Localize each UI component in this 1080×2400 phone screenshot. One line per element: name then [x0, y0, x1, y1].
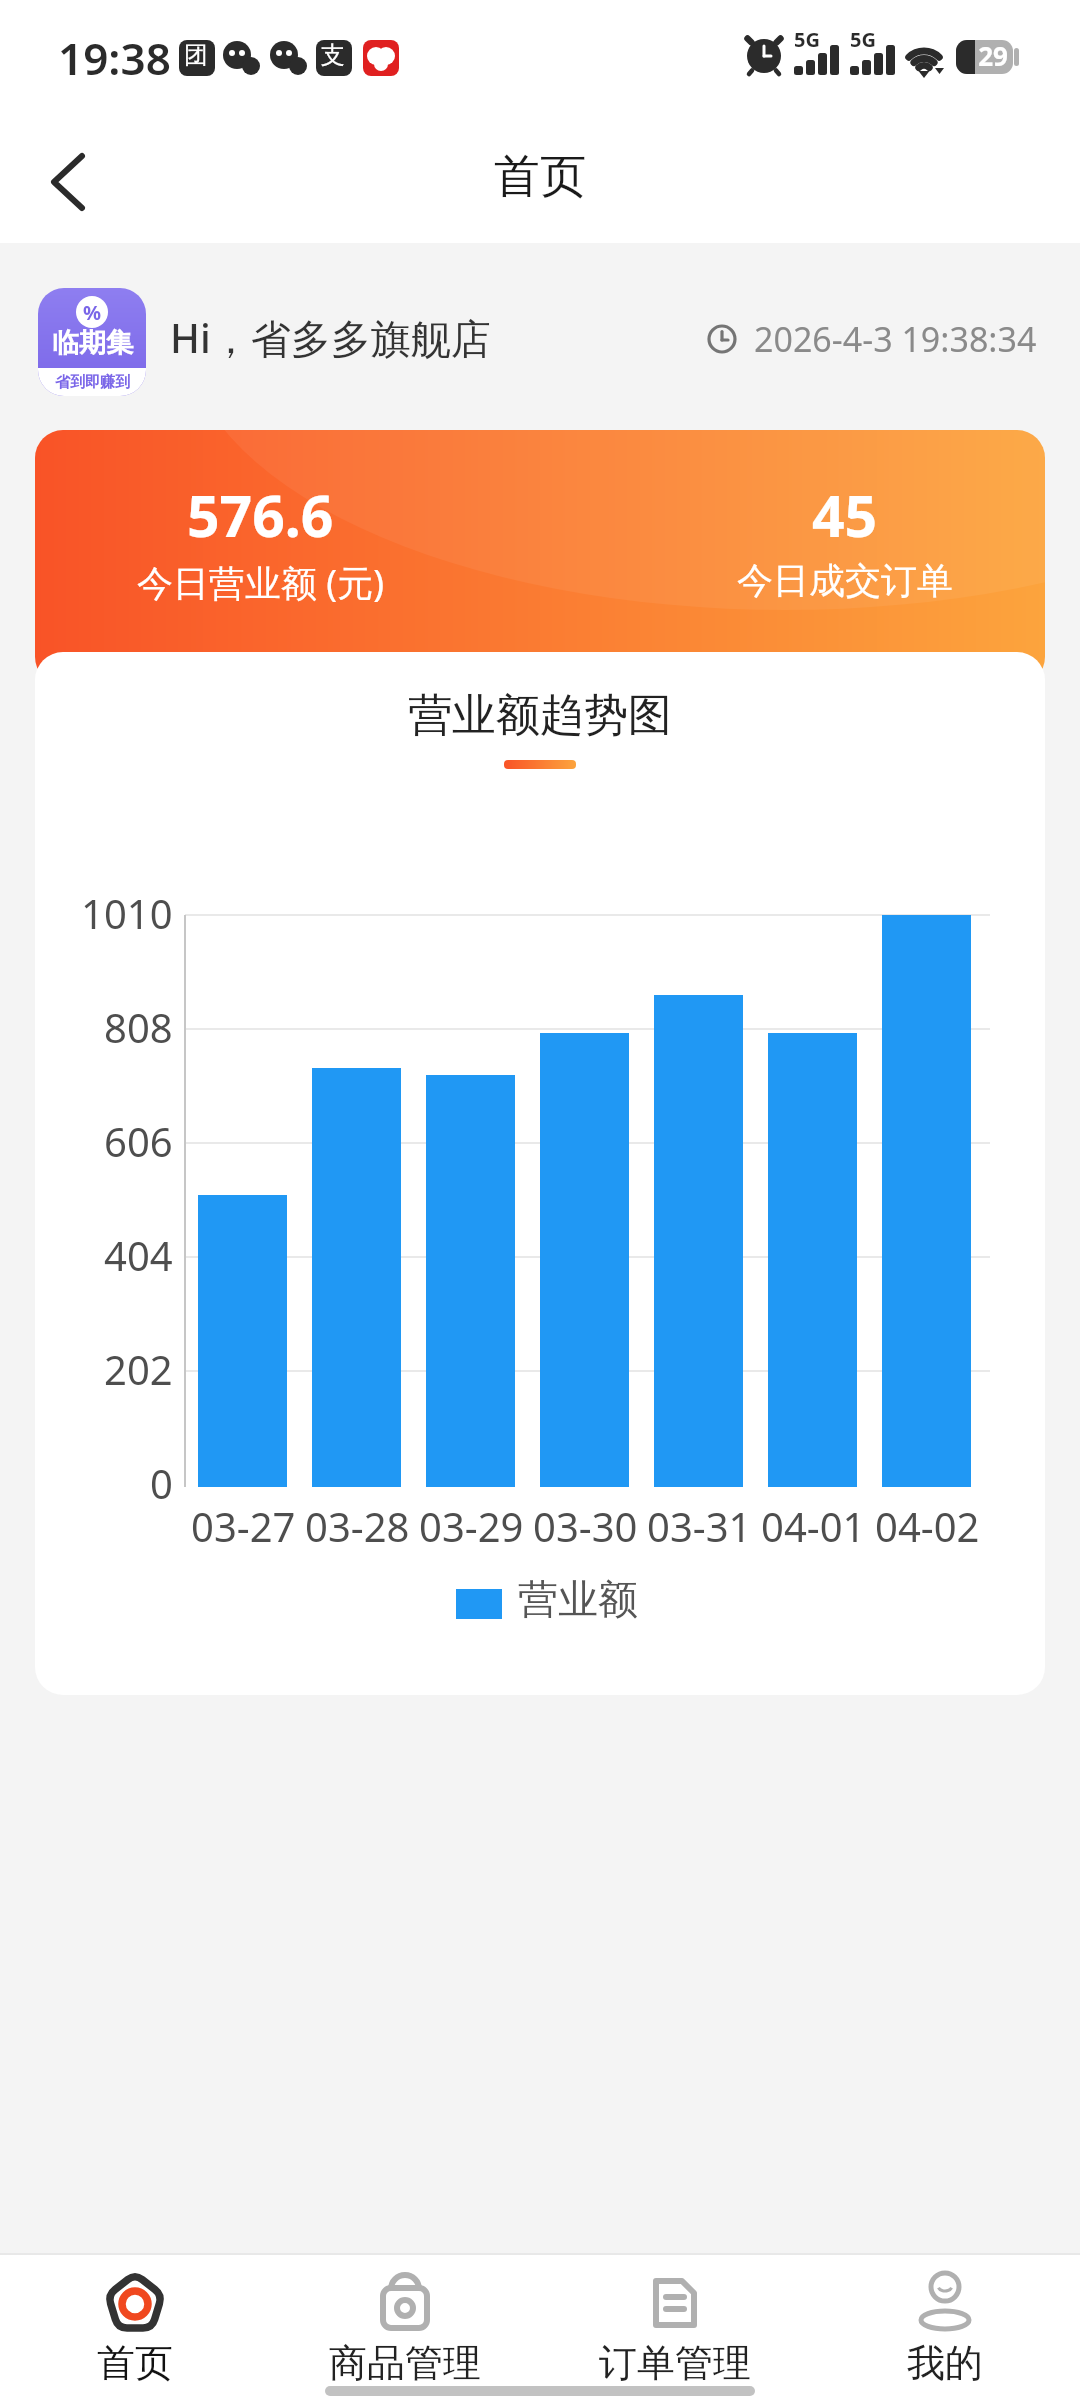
staticText: 03-27 — [191, 1499, 296, 1553]
staticText: 808 — [104, 1000, 173, 1054]
staticText: Hi，省多多旗舰店 — [170, 310, 491, 365]
staticText: 1010 — [81, 886, 173, 940]
staticText: % — [83, 299, 102, 326]
staticText: 45 — [812, 476, 878, 554]
staticText: 202 — [104, 1342, 173, 1396]
staticText: 营业额趋势图 — [408, 688, 672, 743]
staticText: 支 — [321, 40, 345, 70]
staticText: 03-30 — [533, 1499, 638, 1553]
staticText: 04-02 — [875, 1499, 980, 1553]
button[interactable]: 订单管理 — [540, 2255, 810, 2387]
staticText: 临期集 — [52, 326, 133, 360]
staticText: 订单管理 — [599, 2339, 751, 2387]
staticText: 5G — [850, 26, 876, 53]
staticText: 576.6 — [187, 476, 334, 554]
staticText: 首页 — [494, 148, 586, 206]
staticText: 29 — [974, 38, 1012, 73]
button[interactable]: 商品管理 — [270, 2255, 540, 2387]
button[interactable]: 首页 — [0, 2255, 270, 2387]
staticText: 首页 — [97, 2339, 173, 2387]
staticText: 03-29 — [419, 1499, 524, 1553]
staticText: 5G — [794, 26, 820, 53]
staticText: 省到即赚到 — [55, 373, 130, 392]
staticText: 03-28 — [305, 1499, 410, 1553]
staticText: 0 — [150, 1456, 173, 1510]
staticText: 我的 — [907, 2339, 983, 2387]
staticText: 团 — [184, 40, 208, 70]
button[interactable]: 576.6 — [35, 430, 1045, 685]
staticText: 营业额 — [518, 1574, 638, 1624]
staticText: 今日营业额 (元) — [137, 558, 384, 607]
button[interactable]: 我的 — [810, 2255, 1080, 2387]
staticText: 今日成交订单 — [737, 558, 953, 603]
button[interactable] — [48, 152, 88, 212]
staticText: 19:38 — [58, 28, 171, 88]
staticText: 03-31 — [647, 1499, 752, 1553]
staticText: 2026-4-3 19:38:34 — [754, 316, 1037, 362]
staticText: 404 — [104, 1228, 173, 1282]
staticText: 商品管理 — [329, 2339, 481, 2387]
staticText: 606 — [104, 1114, 173, 1168]
staticText: 04-01 — [761, 1499, 866, 1553]
